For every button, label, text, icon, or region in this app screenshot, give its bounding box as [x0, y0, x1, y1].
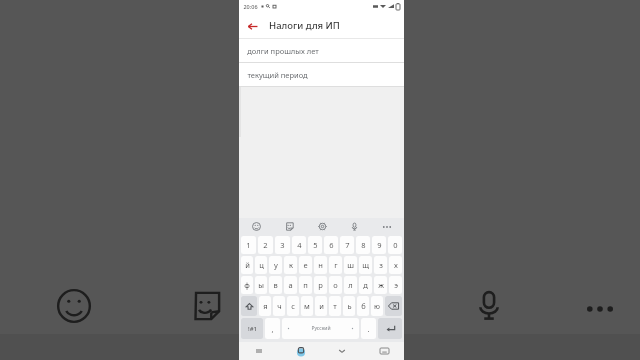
button[interactable]: More options: [376, 218, 398, 235]
staticText: ж: [378, 280, 384, 290]
staticText: э: [394, 280, 398, 290]
button[interactable]: Settings: [311, 218, 333, 235]
other: Shift: [245, 302, 254, 311]
staticText: у: [274, 260, 278, 270]
button[interactable]: Shift: [241, 296, 257, 316]
button[interactable]: ж: [374, 276, 387, 294]
button[interactable]: Recents: [251, 343, 267, 359]
staticText: т: [333, 301, 337, 311]
button[interactable]: Home: [293, 343, 309, 359]
button[interactable]: More options: [583, 302, 617, 316]
button[interactable]: в: [269, 276, 282, 294]
staticText: 6: [329, 240, 334, 250]
button[interactable]: текущий период: [239, 63, 404, 86]
staticText: л: [348, 280, 353, 290]
staticText: ы: [258, 280, 264, 290]
button[interactable]: !#1: [241, 318, 263, 339]
button[interactable]: ч: [273, 296, 285, 316]
button[interactable]: Emoji: [245, 218, 267, 235]
button[interactable]: ь: [343, 296, 355, 316]
button[interactable]: 1: [241, 236, 256, 254]
button[interactable]: з: [374, 256, 387, 274]
button[interactable]: с: [287, 296, 299, 316]
staticText: г: [334, 260, 338, 270]
staticText: .: [367, 324, 370, 334]
button[interactable]: м: [301, 296, 313, 316]
button[interactable]: э: [389, 276, 402, 294]
staticText: щ: [362, 260, 369, 270]
button[interactable]: ы: [255, 276, 267, 294]
button[interactable]: 7: [340, 236, 354, 254]
button[interactable]: б: [357, 296, 369, 316]
button[interactable]: й: [241, 256, 253, 274]
button[interactable]: Enter: [378, 318, 402, 339]
staticText: ш: [347, 260, 354, 270]
button[interactable]: .: [361, 318, 376, 339]
staticText: п: [303, 280, 308, 290]
staticText: ф: [244, 280, 250, 290]
button[interactable]: г: [329, 256, 342, 274]
button[interactable]: Stickers: [190, 290, 222, 322]
button[interactable]: 2: [258, 236, 273, 254]
button[interactable]: Русский: [282, 318, 359, 339]
button[interactable]: ц: [255, 256, 267, 274]
button[interactable]: 3: [275, 236, 290, 254]
button[interactable]: Backspace: [385, 296, 402, 316]
button[interactable]: ф: [241, 276, 253, 294]
button[interactable]: д: [359, 276, 372, 294]
button[interactable]: 4: [292, 236, 306, 254]
staticText: ,: [271, 324, 274, 334]
staticText: я: [263, 301, 268, 311]
staticText: 4: [297, 240, 302, 250]
button[interactable]: х: [389, 256, 402, 274]
button[interactable]: е: [299, 256, 312, 274]
staticText: 9: [377, 240, 382, 250]
staticText: ь: [347, 301, 352, 311]
button[interactable]: Hide keyboard: [334, 343, 350, 359]
button[interactable]: р: [314, 276, 327, 294]
staticText: 7: [345, 240, 350, 250]
button[interactable]: 6: [324, 236, 338, 254]
button[interactable]: Voice input: [472, 288, 506, 322]
staticText: д: [363, 280, 368, 290]
staticText: о: [333, 280, 338, 290]
staticText: м: [304, 301, 310, 311]
button[interactable]: Voice input: [343, 218, 365, 235]
button[interactable]: Back: [239, 13, 265, 39]
staticText: в: [273, 280, 278, 290]
button[interactable]: 5: [308, 236, 322, 254]
staticText: ю: [374, 301, 380, 311]
button[interactable]: у: [269, 256, 282, 274]
staticText: долги прошлых лет: [247, 46, 319, 56]
staticText: !#1: [248, 325, 257, 333]
button[interactable]: ,: [265, 318, 280, 339]
staticText: з: [379, 260, 383, 270]
button[interactable]: н: [314, 256, 327, 274]
button[interactable]: п: [299, 276, 312, 294]
button[interactable]: л: [344, 276, 357, 294]
button[interactable]: я: [259, 296, 271, 316]
button[interactable]: 0: [388, 236, 402, 254]
button[interactable]: а: [284, 276, 297, 294]
staticText: текущий период: [247, 70, 308, 80]
button[interactable]: щ: [359, 256, 372, 274]
button[interactable]: 9: [372, 236, 386, 254]
button[interactable]: и: [315, 296, 327, 316]
staticText: б: [361, 301, 366, 311]
button[interactable]: Emoji: [56, 288, 92, 324]
staticText: н: [318, 260, 323, 270]
staticText: ч: [277, 301, 282, 311]
staticText: 3: [280, 240, 285, 250]
button[interactable]: долги прошлых лет: [239, 39, 404, 62]
button[interactable]: к: [284, 256, 297, 274]
button[interactable]: т: [329, 296, 341, 316]
button[interactable]: о: [329, 276, 342, 294]
other: Backspace: [388, 302, 399, 310]
button[interactable]: Stickers: [278, 218, 300, 235]
staticText: к: [289, 260, 293, 270]
button[interactable]: ш: [344, 256, 357, 274]
staticText: е: [303, 260, 308, 270]
button[interactable]: Change keyboard: [376, 343, 392, 359]
button[interactable]: 8: [356, 236, 370, 254]
button[interactable]: ю: [371, 296, 383, 316]
